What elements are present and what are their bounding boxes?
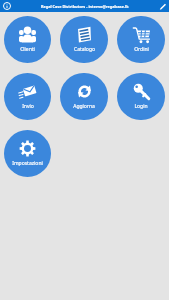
staticText: Invio bbox=[22, 103, 34, 110]
button[interactable]: Info bbox=[2, 1, 12, 11]
button[interactable]: Clienti bbox=[4, 16, 51, 63]
button[interactable]: Catalogo bbox=[60, 16, 108, 63]
button[interactable]: Impostazioni bbox=[4, 130, 51, 177]
staticText: Clienti bbox=[20, 46, 35, 53]
staticText: Ordini bbox=[134, 46, 149, 53]
staticText: Impostazioni bbox=[12, 160, 43, 167]
staticText: Login bbox=[134, 103, 148, 110]
button[interactable]: Ordini bbox=[117, 16, 165, 63]
staticText: Regal Case Distributors - interno@regalc… bbox=[41, 4, 129, 9]
staticText: Aggiorna bbox=[73, 103, 95, 110]
button[interactable]: Aggiorna bbox=[60, 73, 108, 120]
button[interactable]: Invio bbox=[4, 73, 51, 120]
staticText: Catalogo bbox=[74, 46, 95, 53]
button[interactable]: Login bbox=[117, 73, 165, 120]
button[interactable]: Edit bbox=[157, 1, 167, 11]
